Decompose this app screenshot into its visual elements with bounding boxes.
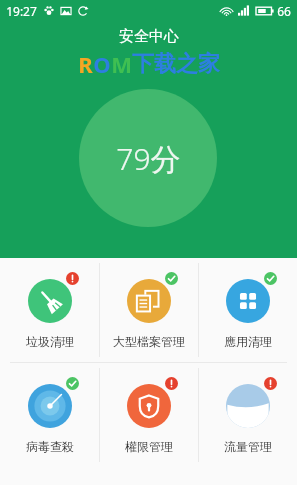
button[interactable]: 權限管理 bbox=[100, 363, 198, 467]
staticText: 流量管理 bbox=[224, 439, 272, 454]
staticText: 安全中心 bbox=[119, 27, 179, 46]
staticText: 19:27 bbox=[6, 3, 37, 19]
staticText: 66 bbox=[277, 3, 291, 19]
staticText: R bbox=[78, 49, 93, 79]
staticText: M bbox=[111, 49, 132, 79]
staticText: O bbox=[93, 49, 111, 79]
staticText: 垃圾清理 bbox=[26, 334, 74, 349]
staticText: 79分 bbox=[116, 138, 181, 179]
staticText: 應用清理 bbox=[224, 334, 272, 349]
button[interactable]: 流量管理 bbox=[199, 363, 297, 467]
button[interactable]: 病毒查殺 bbox=[0, 363, 99, 467]
button[interactable]: 應用清理 bbox=[199, 258, 297, 362]
button[interactable]: 垃圾清理 bbox=[0, 258, 99, 362]
staticText: 下载之家 bbox=[132, 50, 220, 78]
button[interactable]: 大型檔案管理 bbox=[100, 258, 198, 362]
staticText: 病毒查殺 bbox=[26, 439, 74, 454]
button[interactable]: 安全评分 79分 bbox=[79, 89, 217, 227]
staticText: 權限管理 bbox=[125, 439, 173, 454]
staticText: 大型檔案管理 bbox=[113, 334, 185, 349]
